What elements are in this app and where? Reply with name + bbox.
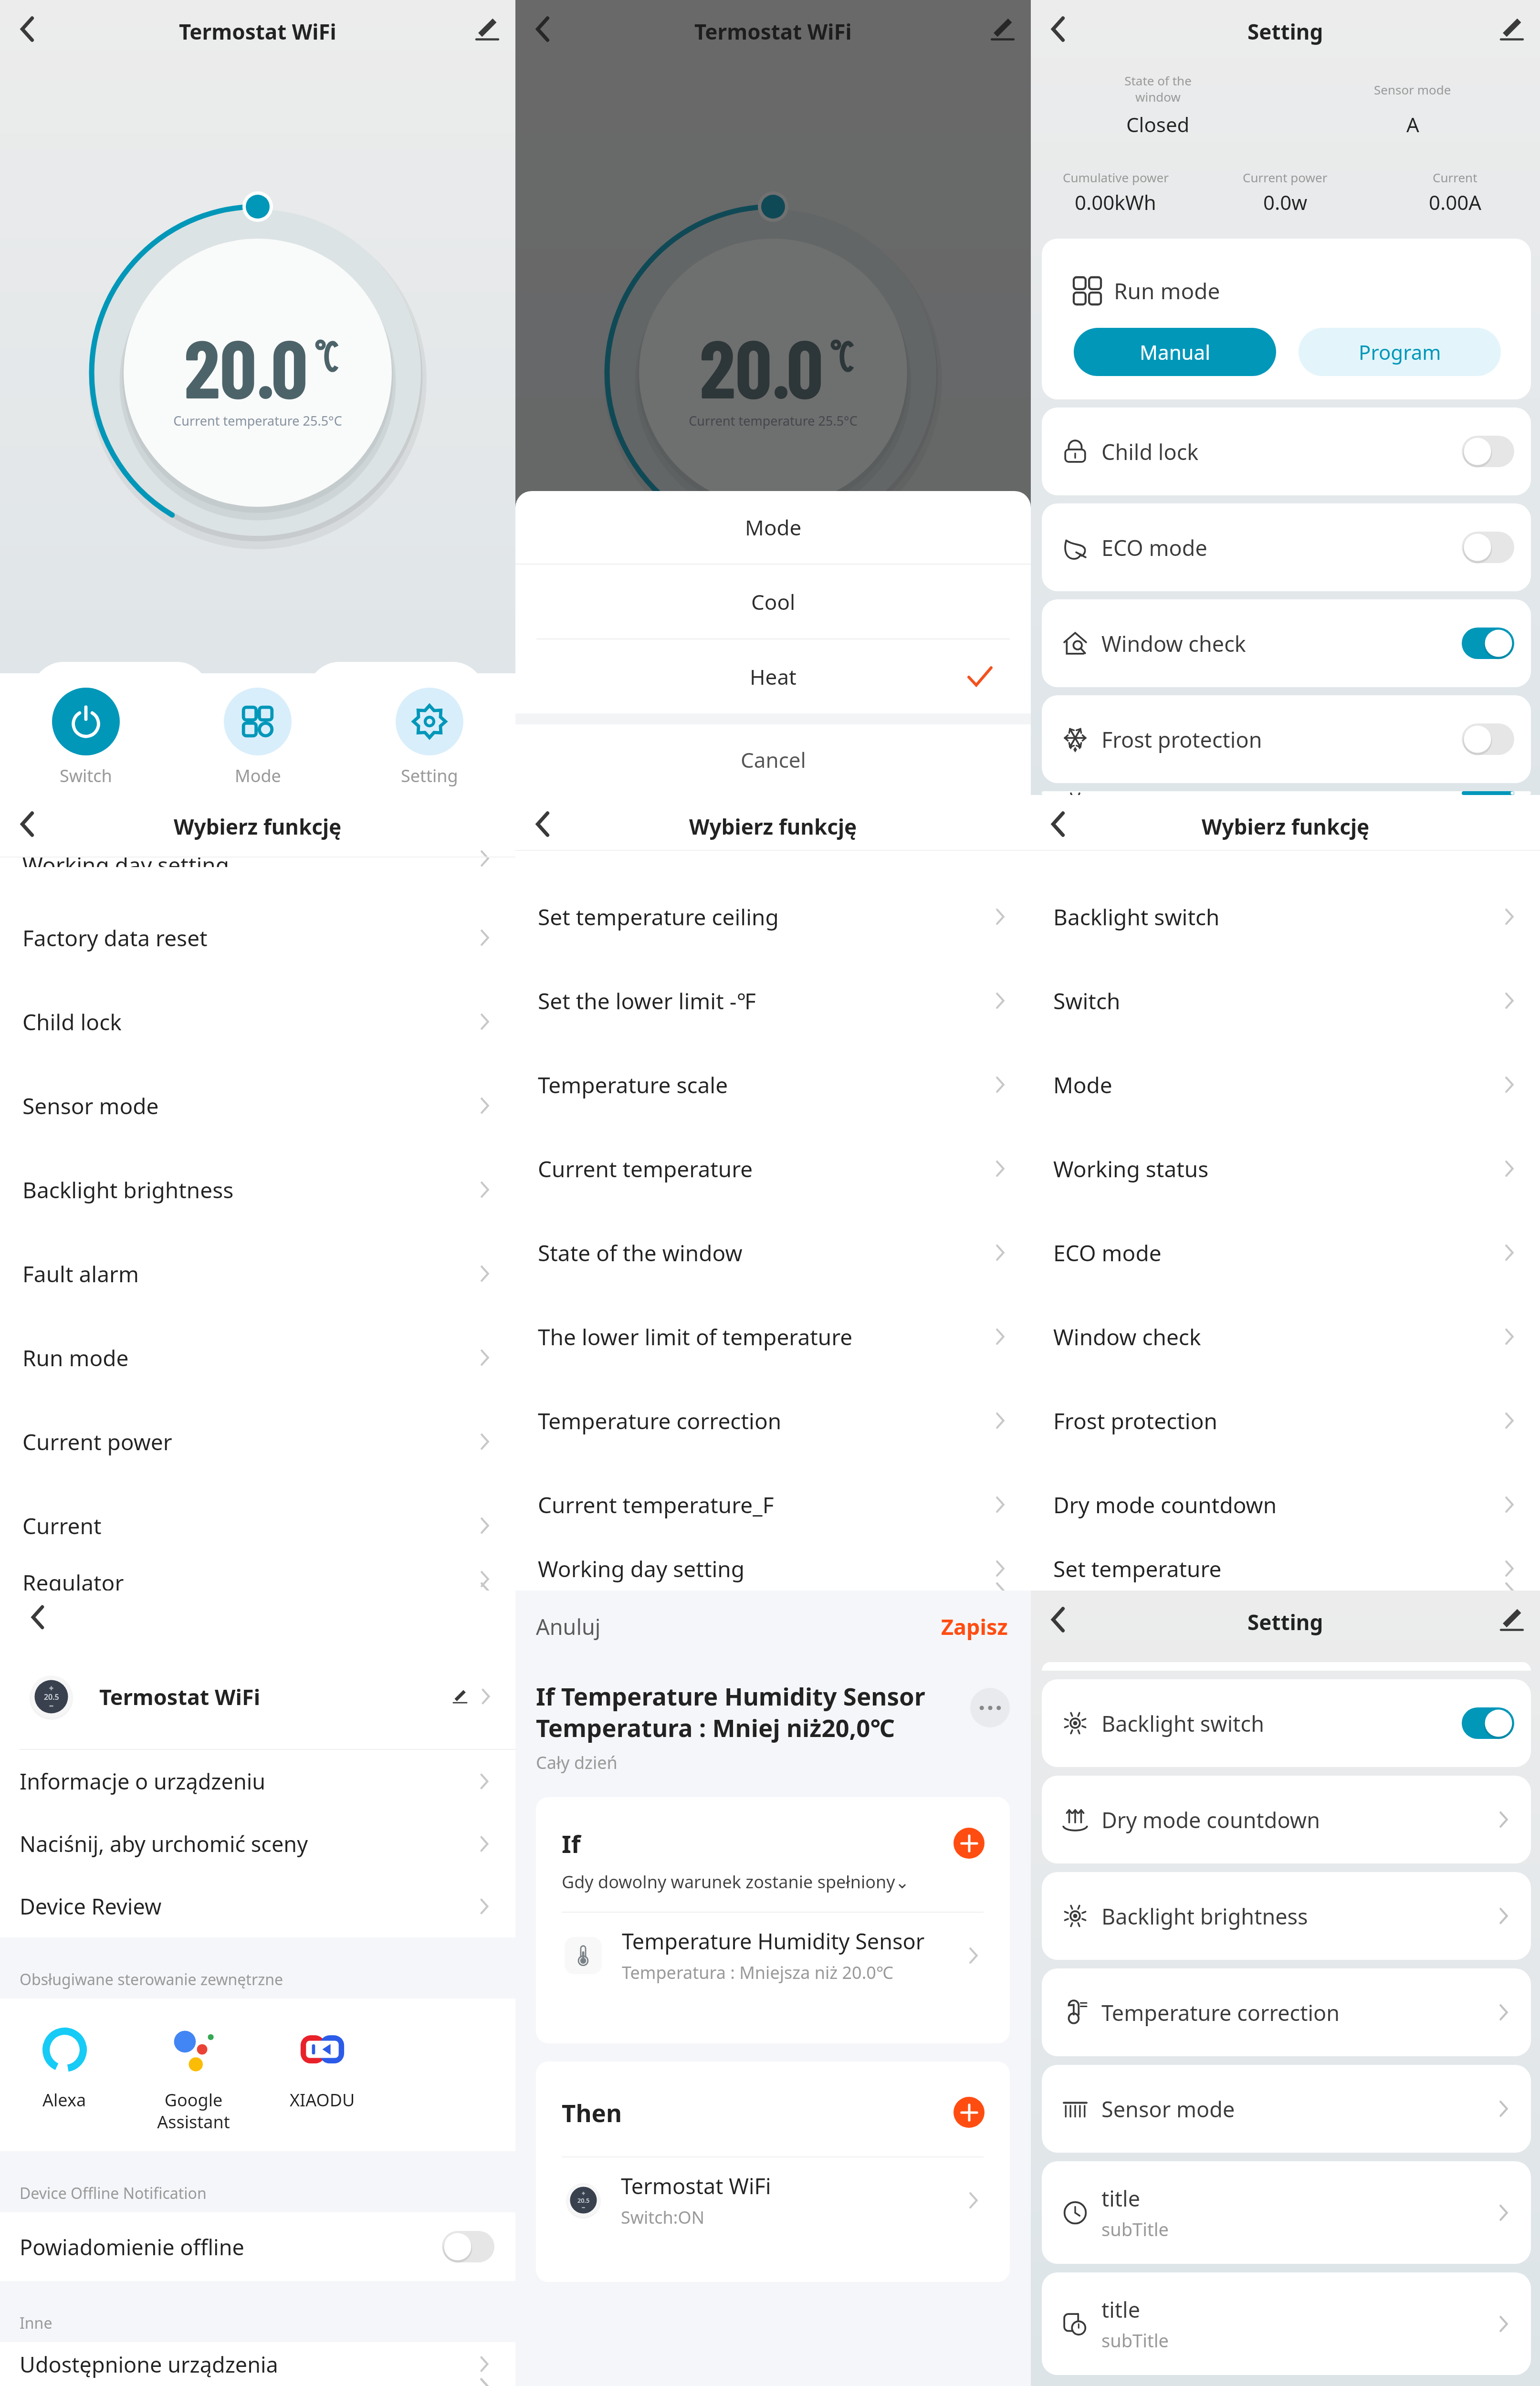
button[interactable]: Window check — [1053, 1295, 1520, 1379]
button[interactable]: Edit — [981, 8, 1024, 51]
button[interactable]: Anuluj — [536, 1612, 601, 1641]
button[interactable]: Mode — [1053, 1043, 1520, 1127]
button[interactable]: Run mode — [1042, 239, 1531, 399]
staticText: Setting — [1247, 17, 1323, 46]
button[interactable]: Cool — [515, 565, 1031, 638]
button[interactable]: Sensor mode — [22, 1064, 495, 1148]
button[interactable]: Heat — [515, 639, 1031, 713]
button[interactable]: Switch — [1053, 959, 1520, 1043]
button[interactable]: Dry mode countdown — [1053, 1463, 1520, 1547]
staticText: Backlight switch — [1053, 902, 1499, 932]
button[interactable]: Working day setting — [538, 1547, 1011, 1591]
staticText: Termostat WiFi — [179, 17, 336, 46]
button[interactable]: Temperature scale — [538, 1043, 1011, 1127]
button[interactable]: Back — [16, 1596, 59, 1639]
button[interactable]: Sensor mode — [1042, 2065, 1531, 2153]
button[interactable]: title — [1042, 2272, 1531, 2375]
staticText: Temperature correction — [1101, 1998, 1493, 2027]
button[interactable]: Backlight brightness — [1042, 1872, 1531, 1960]
button[interactable]: Set temperature — [1053, 1547, 1520, 1591]
button[interactable]: Backlight switch — [1042, 1679, 1531, 1767]
staticText: Mode — [750, 764, 796, 787]
button[interactable]: Edit — [1490, 1598, 1533, 1641]
button[interactable]: State of the window — [538, 1211, 1011, 1295]
button[interactable]: Naciśnij, aby urchomić sceny — [20, 1812, 494, 1875]
button[interactable]: ECO mode — [1053, 1211, 1520, 1295]
button[interactable]: Add — [953, 1828, 985, 1859]
button[interactable]: Switch — [0, 688, 172, 787]
button[interactable]: Increase — [307, 662, 485, 726]
button[interactable]: Mode — [172, 688, 344, 787]
button[interactable]: XIAODU — [258, 2027, 387, 2112]
button[interactable]: Google Assistant — [129, 2027, 258, 2134]
button[interactable]: Child lock — [22, 980, 495, 1064]
button[interactable]: Run mode — [22, 1316, 495, 1400]
button[interactable]: Back — [3, 800, 51, 848]
button[interactable]: Cancel — [515, 724, 1031, 795]
button[interactable]: Current temperature_F — [538, 1463, 1011, 1547]
staticText: 0.00A — [1429, 188, 1482, 216]
button[interactable]: Manual — [1074, 328, 1276, 376]
button[interactable]: Set the lower limit -℉ — [538, 959, 1011, 1043]
button[interactable]: Back — [1034, 5, 1082, 53]
button[interactable]: Increase — [823, 662, 1000, 726]
button[interactable]: Set temperature ceiling — [538, 875, 1011, 959]
button[interactable]: Current temperature — [538, 1127, 1011, 1211]
button[interactable]: Backlight brightness — [22, 1148, 495, 1232]
button[interactable]: More options — [970, 1688, 1010, 1727]
staticText: 0.0w — [1263, 188, 1308, 216]
button[interactable]: Switch — [515, 688, 687, 787]
staticText: Current — [22, 1511, 474, 1541]
button[interactable]: Temperature correction — [1042, 1968, 1531, 2056]
button[interactable]: Fault alarm — [22, 1232, 495, 1316]
button[interactable]: 20.5 — [30, 1644, 496, 1749]
staticText: Current power — [22, 1427, 474, 1457]
button[interactable]: Child lock — [1042, 408, 1531, 495]
button[interactable]: Back — [3, 5, 51, 53]
button[interactable]: Back — [519, 800, 566, 848]
staticText: Set temperature — [1053, 1554, 1499, 1584]
button[interactable]: Setting — [344, 688, 515, 787]
button[interactable]: Edit — [1490, 8, 1533, 51]
button[interactable]: Backlight switch — [1053, 875, 1520, 959]
staticText: Switch:ON — [621, 2206, 704, 2229]
button[interactable]: Zapisz — [941, 1612, 1008, 1641]
button[interactable]: Alexa — [0, 2027, 129, 2112]
button[interactable]: Regulator — [22, 1568, 495, 1591]
button[interactable]: Decrease — [31, 662, 209, 726]
button[interactable]: Frost protection — [1042, 695, 1531, 783]
staticText: Termostat WiFi — [621, 2171, 771, 2200]
button[interactable]: Back — [519, 5, 566, 53]
button[interactable]: Informacje o urządzeniu — [20, 1750, 494, 1812]
button[interactable]: Working status — [1053, 1127, 1520, 1211]
staticText: Inne — [20, 2313, 52, 2334]
button[interactable]: The lower limit of temperature — [538, 1295, 1011, 1379]
button[interactable]: Back — [1034, 1596, 1082, 1643]
button[interactable]: Mode — [515, 491, 1031, 564]
button[interactable]: Temperature Humidity Sensor — [565, 1926, 984, 1984]
button[interactable]: Program — [1299, 328, 1501, 376]
button[interactable]: Frost protection — [1053, 1379, 1520, 1463]
button[interactable]: 20.5 — [566, 2171, 984, 2229]
button[interactable]: Udostępnione urządzenia — [20, 2342, 494, 2386]
button[interactable]: Back — [1034, 800, 1082, 848]
button[interactable]: title — [1042, 2161, 1531, 2264]
button[interactable]: Current power — [22, 1400, 495, 1484]
button[interactable]: ECO mode — [1042, 503, 1531, 591]
button[interactable]: Window check — [1042, 599, 1531, 687]
button[interactable]: Factory data reset — [22, 896, 495, 980]
button[interactable]: Mode — [687, 688, 859, 787]
button[interactable]: Decrease — [547, 662, 724, 726]
button[interactable]: Edit — [466, 8, 509, 51]
button[interactable]: Current — [22, 1484, 495, 1568]
staticText: A — [1406, 111, 1419, 138]
button[interactable]: Powiadomienie offline — [20, 2212, 494, 2281]
staticText: Set temperature ceiling — [538, 902, 990, 932]
button[interactable]: Dry mode countdown — [1042, 1776, 1531, 1863]
staticText: Sensor mode — [1101, 2094, 1493, 2124]
button[interactable]: Backlight switch — [1042, 791, 1531, 795]
button[interactable]: Add — [953, 2097, 985, 2128]
button[interactable]: Temperature correction — [538, 1379, 1011, 1463]
button[interactable]: Device Review — [20, 1875, 494, 1937]
button[interactable]: Setting — [859, 688, 1031, 787]
